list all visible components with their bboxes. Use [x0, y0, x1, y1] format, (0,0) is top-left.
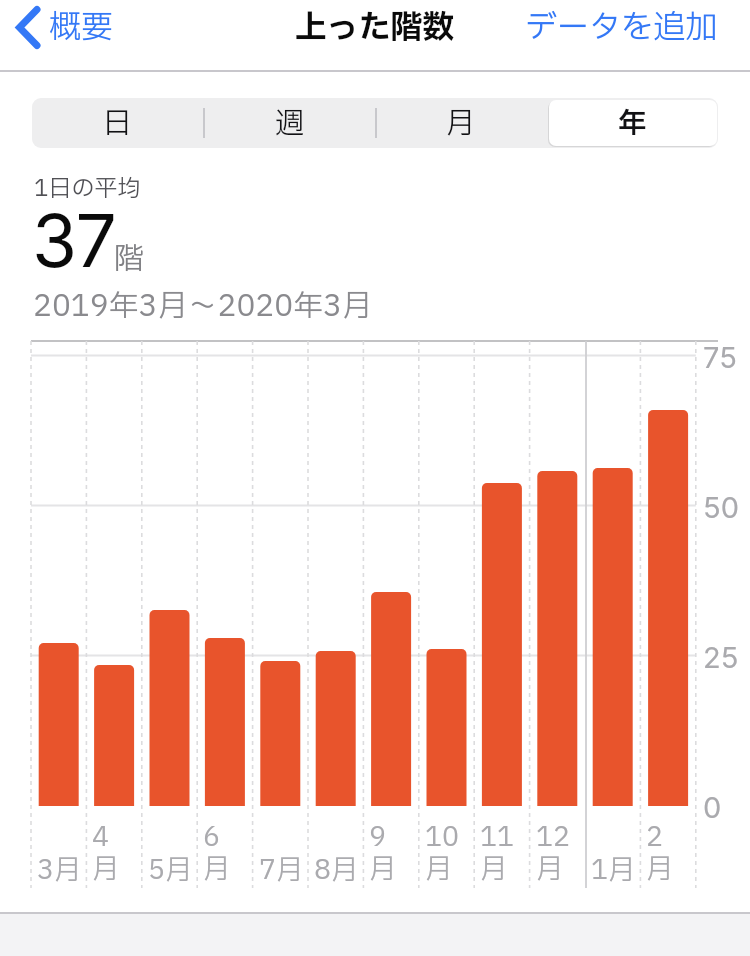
- button[interactable]: 日: [32, 98, 204, 148]
- staticText: 7月: [259, 850, 304, 890]
- staticText: 0: [703, 790, 722, 825]
- staticText: 2 月: [646, 817, 673, 889]
- staticText: 2019年3月〜2020年3月: [33, 284, 372, 329]
- staticText: 50: [703, 490, 739, 525]
- staticText: データを追加: [525, 4, 718, 52]
- staticText: 1月: [591, 850, 636, 890]
- staticText: 10 月: [425, 817, 460, 889]
- staticText: 8月: [314, 850, 359, 890]
- staticText: 上った階数: [295, 4, 455, 52]
- staticText: 37: [32, 196, 116, 284]
- staticText: 25: [703, 640, 739, 675]
- button[interactable]: 月: [375, 98, 547, 148]
- staticText: 75: [703, 340, 737, 375]
- staticText: 9 月: [369, 817, 396, 889]
- staticText: 年: [618, 102, 648, 145]
- staticText: 月: [446, 102, 476, 145]
- button[interactable]: 概要: [16, 0, 114, 56]
- staticText: 6 月: [203, 817, 230, 889]
- staticText: 1日の平均: [34, 172, 141, 206]
- button[interactable]: 年: [547, 98, 718, 148]
- staticText: 12 月: [536, 817, 571, 889]
- staticText: 週: [275, 102, 305, 145]
- staticText: 4 月: [92, 817, 119, 889]
- button[interactable]: 週: [204, 98, 376, 148]
- button[interactable]: データを追加: [525, 0, 718, 56]
- staticText: 5月: [148, 850, 193, 890]
- staticText: 日: [103, 102, 133, 145]
- staticText: 階: [114, 237, 144, 282]
- staticText: 3月: [37, 850, 82, 890]
- staticText: 概要: [49, 4, 114, 52]
- staticText: 11 月: [480, 817, 515, 889]
